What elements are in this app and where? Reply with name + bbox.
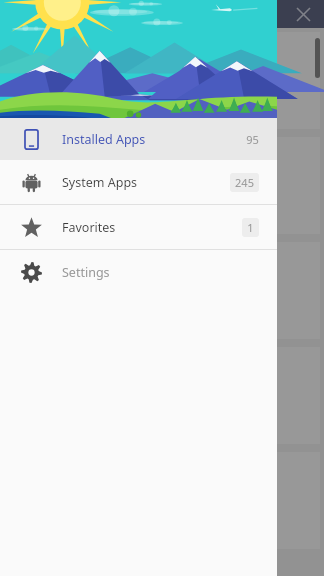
staticText: 95: [246, 132, 259, 147]
staticText: 1: [247, 220, 254, 235]
button[interactable]: [4, 242, 320, 339]
button[interactable]: [4, 452, 320, 549]
button[interactable]: System Apps: [0, 160, 277, 204]
staticText: 245: [235, 175, 254, 190]
button[interactable]: [4, 137, 320, 234]
button[interactable]: Favorites: [0, 205, 277, 249]
staticText: Settings: [62, 264, 110, 281]
staticText: Favorites: [62, 219, 116, 236]
button[interactable]: Installed Apps: [0, 118, 277, 160]
button[interactable]: [4, 347, 320, 444]
button[interactable]: Settings: [0, 250, 277, 294]
button[interactable]: Close: [290, 1, 316, 27]
button[interactable]: [4, 32, 320, 129]
staticText: System Apps: [62, 174, 138, 191]
staticText: Installed Apps: [62, 131, 146, 148]
